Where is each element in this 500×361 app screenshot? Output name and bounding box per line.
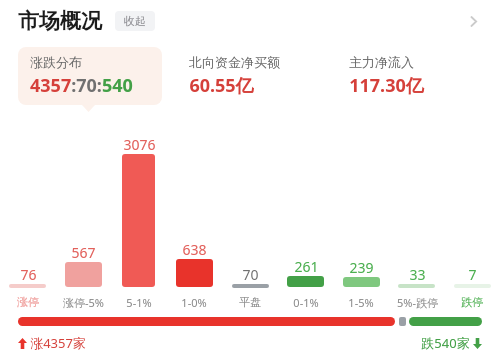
staticText: 主力净流入	[349, 54, 414, 70]
staticText: 5%-跌停	[397, 295, 438, 310]
staticText: 跌540家	[421, 334, 470, 352]
staticText: 1-5%	[348, 295, 374, 310]
button[interactable]: 收起	[115, 11, 155, 31]
staticText: 1-0%	[181, 295, 207, 310]
button[interactable]: 查看更多	[460, 8, 486, 34]
staticText: 市场概况	[18, 8, 102, 34]
staticText: 0-1%	[293, 295, 319, 310]
staticText: 北向资金净买额	[189, 54, 280, 70]
staticText: 平盘	[239, 295, 261, 309]
staticText: 涨跌分布	[30, 54, 82, 70]
button[interactable]: 涨跌分布	[18, 47, 162, 105]
staticText: 261	[294, 257, 319, 276]
staticText: 70	[242, 265, 259, 284]
staticText: 涨停-5%	[63, 295, 104, 310]
staticText: 涨停	[17, 295, 39, 309]
staticText: 跌停	[461, 295, 483, 309]
staticText: 117.30亿	[349, 73, 424, 98]
staticText: 收起	[124, 14, 146, 28]
staticText: 3076	[123, 135, 156, 154]
staticText: 33	[409, 265, 426, 284]
staticText: 涨4357家	[30, 334, 86, 352]
staticText: 4357:70:540	[30, 73, 133, 98]
button[interactable]: 主力净流入	[337, 47, 483, 105]
staticText: 76	[20, 265, 37, 284]
staticText: 7	[468, 265, 477, 284]
staticText: 60.55亿	[189, 73, 254, 98]
staticText: 567	[71, 243, 96, 262]
staticText: 5-1%	[126, 295, 152, 310]
staticText: 638	[182, 240, 207, 259]
staticText: 239	[349, 258, 374, 277]
button[interactable]: 北向资金净买额	[177, 47, 323, 105]
